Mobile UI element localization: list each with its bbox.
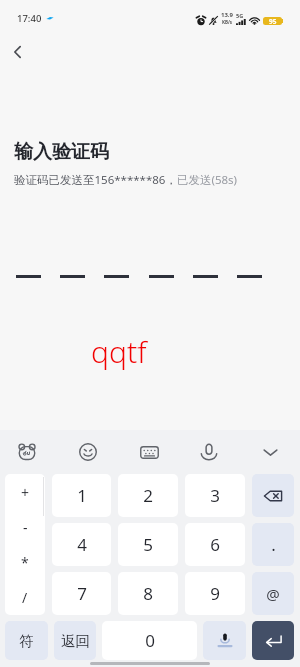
button[interactable]: 0 xyxy=(102,621,197,660)
button[interactable]: Emoji xyxy=(72,436,104,468)
button[interactable]: + xyxy=(5,474,45,615)
button[interactable]: Hide keyboard xyxy=(254,436,286,468)
staticText: 17:40 xyxy=(17,12,42,25)
staticText: 输入验证码 xyxy=(14,140,109,164)
button[interactable]: 返回 xyxy=(54,621,96,660)
button[interactable]: Enter xyxy=(252,621,294,660)
button[interactable]: 6 xyxy=(185,523,245,566)
staticText: 9 xyxy=(210,582,220,605)
staticText: . xyxy=(271,533,276,556)
staticText: 13.9 xyxy=(221,11,233,19)
button[interactable]: Voice input xyxy=(203,621,246,660)
staticText: 6 xyxy=(210,533,220,556)
staticText: + xyxy=(21,483,30,502)
staticText: 2 xyxy=(143,484,153,507)
button[interactable]: Back xyxy=(4,38,31,65)
staticText: 3 xyxy=(210,484,220,507)
staticText: KB/s xyxy=(222,19,233,25)
button[interactable]: 2 xyxy=(118,474,178,517)
button[interactable]: 符 xyxy=(5,621,48,660)
staticText: 8 xyxy=(143,582,153,605)
staticText: 5 xyxy=(143,533,153,556)
button[interactable]: . xyxy=(252,523,294,566)
button[interactable]: 7 xyxy=(52,572,111,615)
staticText: 5G xyxy=(236,12,244,19)
button[interactable]: 4 xyxy=(52,523,111,566)
button[interactable]: 1 xyxy=(52,474,111,517)
staticText: / xyxy=(22,588,28,607)
button[interactable]: 5 xyxy=(118,523,178,566)
staticText: qqtf xyxy=(91,331,147,372)
button[interactable]: Switch keyboard xyxy=(133,436,165,468)
staticText: 95 xyxy=(269,17,277,25)
staticText: 已发送(58s) xyxy=(177,172,238,188)
staticText: 返回 xyxy=(61,632,90,650)
staticText: 4 xyxy=(77,533,87,556)
staticText: 符 xyxy=(19,632,34,650)
button[interactable]: 3 xyxy=(185,474,245,517)
staticText: 验证码已发送至156******86， xyxy=(14,172,177,188)
button[interactable]: @ xyxy=(252,572,294,615)
button[interactable]: Backspace xyxy=(252,474,294,517)
button[interactable]: Baidu input method xyxy=(11,436,43,468)
button[interactable]: 9 xyxy=(185,572,245,615)
button[interactable]: 8 xyxy=(118,572,178,615)
staticText: 7 xyxy=(77,582,87,605)
staticText: - xyxy=(23,518,28,537)
staticText: @ xyxy=(266,584,280,604)
staticText: 1 xyxy=(77,484,87,507)
button[interactable]: Voice input xyxy=(193,436,225,468)
staticText: 0 xyxy=(145,629,155,652)
staticText: * xyxy=(21,553,29,572)
